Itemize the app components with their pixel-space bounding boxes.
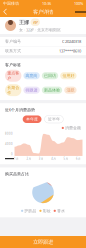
staticText: 待跟进 — [26, 88, 38, 93]
staticText: 137****8610 — [59, 48, 81, 53]
staticText: 客户详情 — [33, 9, 53, 15]
staticText: 1月 — [14, 157, 19, 160]
staticText: 100% — [74, 1, 83, 6]
staticText: 王娜 — [19, 19, 29, 26]
staticText: 购买品类占比 — [5, 171, 29, 176]
button[interactable]: 返回 — [0, 7, 11, 17]
staticText: 2月 — [26, 157, 31, 160]
staticText: VIP — [33, 20, 38, 25]
staticText: 10:36 — [42, 1, 51, 6]
staticText: 重点客户 — [7, 71, 19, 81]
button[interactable]: 近半年 — [44, 115, 63, 123]
staticText: 4月 — [51, 157, 56, 160]
button[interactable]: 客户编号 — [0, 37, 86, 46]
staticText: 联系方式 — [5, 48, 21, 53]
staticText: 活跃 — [66, 88, 74, 93]
staticText: 香水 — [57, 208, 65, 213]
button[interactable]: 本年度 — [23, 115, 41, 123]
staticText: 中国移动 — [3, 1, 19, 6]
staticText: 信用好 — [62, 73, 74, 78]
staticText: 立即跟进 — [33, 239, 53, 245]
button[interactable]: 立即跟进 — [0, 236, 86, 248]
staticText: 长期合作 — [7, 85, 19, 95]
staticText: 本年度 — [26, 117, 38, 122]
staticText: 客户标签 — [5, 62, 21, 67]
staticText: 0 — [11, 152, 13, 156]
staticText: 女 · 32岁 · 北京市朝阳区 — [19, 27, 61, 32]
staticText: 5月 — [64, 157, 69, 160]
staticText: C20240318 — [62, 39, 81, 44]
staticText: 消费金额 — [65, 125, 81, 130]
staticText: 护肤品 — [24, 208, 36, 213]
staticText: 6月 — [76, 157, 81, 160]
button[interactable]: 联系方式 — [0, 46, 86, 55]
staticText: 高意向 — [26, 73, 38, 78]
staticText: 近半年 — [48, 117, 60, 122]
button[interactable]: 王娜 — [0, 17, 86, 34]
staticText: 8000 — [5, 132, 13, 135]
staticText: 近6个月消费趋势 — [5, 107, 35, 112]
staticText: 彩妆 — [43, 208, 51, 213]
staticText: 新品体验 — [44, 88, 60, 93]
staticText: 4000 — [5, 142, 13, 146]
staticText: 3月 — [39, 157, 44, 160]
staticText: 已回访 — [44, 73, 56, 78]
staticText: 客户编号 — [5, 39, 21, 44]
